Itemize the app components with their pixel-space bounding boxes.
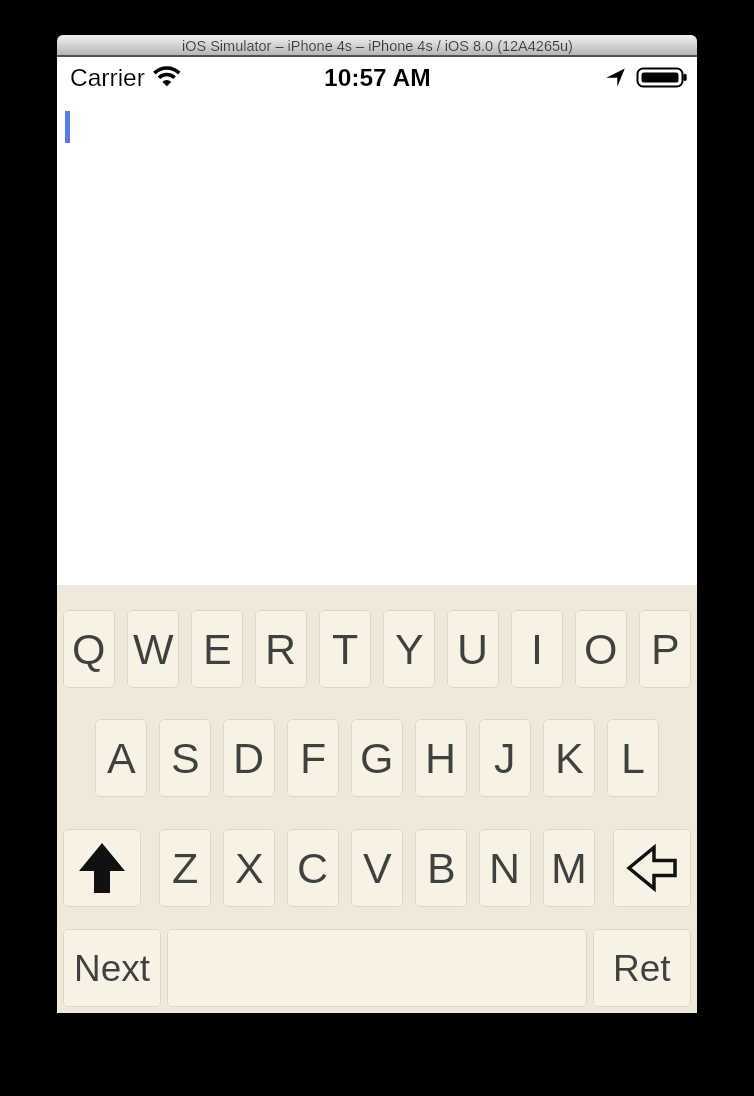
staticText: iOS Simulator – iPhone 4s – iPhone 4s / … <box>182 38 573 54</box>
button[interactable]: J <box>479 719 531 797</box>
button[interactable]: V <box>351 829 403 907</box>
staticText: B <box>427 844 456 892</box>
button[interactable]: R <box>255 610 307 688</box>
button[interactable]: M <box>543 829 595 907</box>
button[interactable]: A <box>95 719 147 797</box>
button[interactable]: P <box>639 610 691 688</box>
staticText: G <box>360 734 394 782</box>
staticText: W <box>133 625 174 673</box>
button[interactable]: K <box>543 719 595 797</box>
staticText: Carrier <box>70 64 145 91</box>
staticText: M <box>551 844 587 892</box>
staticText: Ret <box>613 948 671 989</box>
staticText: Q <box>72 625 106 673</box>
button[interactable]: H <box>415 719 467 797</box>
button[interactable]: T <box>319 610 371 688</box>
button[interactable]: W <box>127 610 179 688</box>
button[interactable]: Ret <box>593 929 691 1007</box>
button[interactable]: G <box>351 719 403 797</box>
button[interactable]: B <box>415 829 467 907</box>
button[interactable] <box>63 829 141 907</box>
staticText: U <box>457 625 489 673</box>
staticText: L <box>621 734 645 782</box>
button[interactable]: X <box>223 829 275 907</box>
staticText: R <box>265 625 297 673</box>
staticText: T <box>332 625 359 673</box>
button[interactable]: I <box>511 610 563 688</box>
button[interactable]: L <box>607 719 659 797</box>
button[interactable]: S <box>159 719 211 797</box>
staticText: K <box>555 734 584 782</box>
staticText: C <box>297 844 329 892</box>
button[interactable]: Y <box>383 610 435 688</box>
staticText: X <box>235 844 264 892</box>
staticText: Next <box>74 948 151 989</box>
staticText: I <box>531 625 543 673</box>
button[interactable]: Next <box>63 929 161 1007</box>
button[interactable]: N <box>479 829 531 907</box>
staticText: F <box>300 734 327 782</box>
staticText: Z <box>172 844 199 892</box>
button[interactable]: O <box>575 610 627 688</box>
button[interactable]: U <box>447 610 499 688</box>
staticText: S <box>171 734 200 782</box>
button[interactable]: Q <box>63 610 115 688</box>
staticText: H <box>425 734 457 782</box>
staticText: D <box>233 734 265 782</box>
button[interactable]: Z <box>159 829 211 907</box>
staticText: V <box>363 844 392 892</box>
staticText: J <box>494 734 516 782</box>
button[interactable]: D <box>223 719 275 797</box>
staticText: E <box>203 625 232 673</box>
staticText: Y <box>395 625 424 673</box>
button[interactable]: C <box>287 829 339 907</box>
button[interactable] <box>613 829 691 907</box>
staticText: N <box>489 844 521 892</box>
staticText: A <box>107 734 136 782</box>
staticText: 10:57 AM <box>324 64 431 91</box>
button[interactable]: F <box>287 719 339 797</box>
staticText: O <box>584 625 618 673</box>
button[interactable]: E <box>191 610 243 688</box>
staticText: P <box>651 625 680 673</box>
button[interactable] <box>167 929 587 1007</box>
